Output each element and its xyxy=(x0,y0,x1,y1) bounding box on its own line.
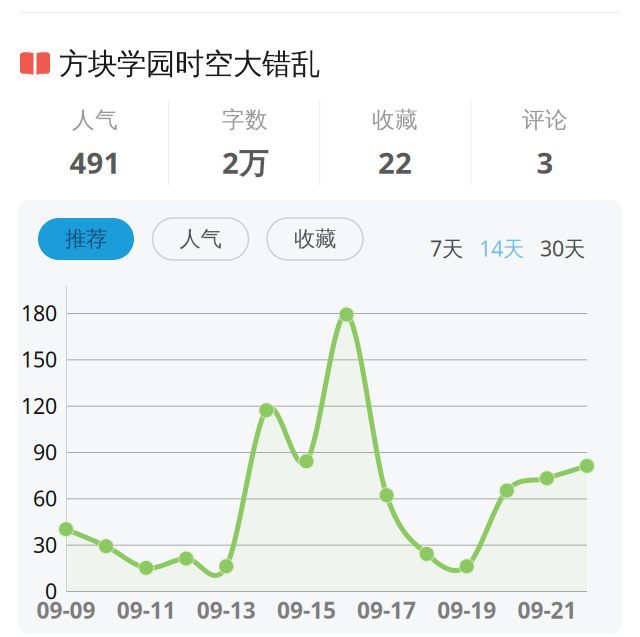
staticText: 180 xyxy=(21,299,57,327)
staticText: 30天 xyxy=(540,234,585,262)
staticText: 491 xyxy=(69,143,120,182)
staticText: 09-13 xyxy=(197,595,256,625)
staticText: 09-17 xyxy=(357,595,416,625)
button[interactable]: 收藏 xyxy=(320,106,470,182)
button[interactable]: 人气 xyxy=(20,106,170,182)
button[interactable]: 人气 xyxy=(152,218,248,260)
button[interactable]: 30天 xyxy=(540,234,585,262)
staticText: 字数 xyxy=(222,106,268,134)
staticText: 收藏 xyxy=(294,226,336,252)
staticText: 评论 xyxy=(522,106,568,134)
button[interactable]: 评论 xyxy=(470,106,620,182)
staticText: 7天 xyxy=(430,234,463,262)
staticText: 收藏 xyxy=(372,106,418,134)
staticText: 09-19 xyxy=(437,595,496,625)
staticText: 09-11 xyxy=(117,595,176,625)
staticText: 2万 xyxy=(222,143,268,182)
staticText: 60 xyxy=(33,484,57,512)
button[interactable]: 方块学园时空大错乱 xyxy=(20,46,380,82)
staticText: 09-15 xyxy=(277,595,336,625)
staticText: 14天 xyxy=(479,234,524,262)
staticText: 推荐 xyxy=(65,226,107,252)
staticText: 09-09 xyxy=(36,595,95,625)
button[interactable]: 收藏 xyxy=(267,218,363,260)
staticText: 方块学园时空大错乱 xyxy=(59,46,320,82)
button[interactable]: 7天 xyxy=(430,234,463,262)
staticText: 09-21 xyxy=(517,595,576,625)
button[interactable]: 字数 xyxy=(170,106,320,182)
staticText: 3 xyxy=(536,143,553,182)
staticText: 150 xyxy=(21,345,57,373)
staticText: 90 xyxy=(33,438,57,466)
staticText: 120 xyxy=(21,391,57,420)
staticText: 人气 xyxy=(179,226,221,252)
button[interactable]: 推荐 xyxy=(38,218,134,260)
staticText: 30 xyxy=(33,530,57,559)
staticText: 22 xyxy=(378,143,412,182)
staticText: 0 xyxy=(45,577,57,605)
staticText: 人气 xyxy=(72,106,118,134)
button[interactable]: 14天 xyxy=(479,234,524,262)
